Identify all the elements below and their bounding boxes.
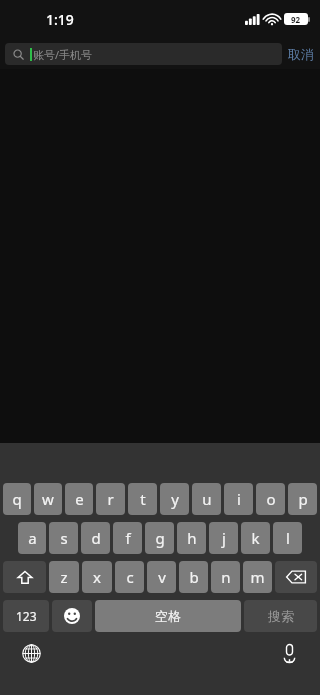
button[interactable]: f [113,522,142,554]
button[interactable]: t [128,483,157,515]
staticText: c [126,567,134,587]
button[interactable]: 搜索 [244,600,317,632]
staticText: r [107,489,114,509]
staticText: u [202,489,212,509]
button[interactable]: c [115,561,144,593]
button[interactable]: q [3,483,31,515]
button[interactable]: 123 [3,600,49,632]
staticText: n [221,567,231,587]
staticText: t [140,489,146,509]
button[interactable]: d [81,522,110,554]
button[interactable]: a [18,522,46,554]
button[interactable]: m [243,561,272,593]
button[interactable]: Voice input [276,640,302,666]
staticText: h [187,528,197,548]
button[interactable]: k [241,522,270,554]
button[interactable]: 取消 [288,46,314,62]
staticText: q [12,489,22,509]
staticText: 搜索 [268,608,294,624]
staticText: f [125,528,131,548]
button[interactable]: Shift [3,561,46,593]
staticText: x [93,567,101,587]
button[interactable]: Emoji [52,600,92,632]
button[interactable]: Switch language [18,640,44,666]
staticText: p [298,489,308,509]
button[interactable]: r [96,483,125,515]
button[interactable]: w [34,483,62,515]
button[interactable]: v [147,561,176,593]
staticText: e [75,489,84,509]
button[interactable]: b [179,561,208,593]
button[interactable]: o [256,483,285,515]
button[interactable]: e [65,483,93,515]
staticText: a [28,528,37,548]
staticText: 账号/手机号 [33,47,93,62]
staticText: k [251,528,260,548]
button[interactable]: i [224,483,253,515]
staticText: 123 [16,608,37,624]
button[interactable]: l [273,522,302,554]
staticText: 92 [291,14,301,25]
staticText: z [60,567,68,587]
button[interactable]: h [177,522,206,554]
button[interactable]: Backspace [275,561,317,593]
button[interactable]: x [82,561,112,593]
button[interactable]: j [209,522,238,554]
staticText: m [250,567,265,587]
staticText: y [171,489,179,509]
staticText: v [158,567,166,587]
staticText: o [266,489,276,509]
button[interactable]: u [192,483,221,515]
staticText: g [155,528,165,548]
staticText: d [91,528,101,548]
staticText: s [60,528,68,548]
staticText: 空格 [155,608,181,624]
button[interactable]: n [211,561,240,593]
staticText: w [42,489,54,509]
staticText: l [286,528,290,548]
button[interactable]: 空格 [95,600,241,632]
staticText: 取消 [288,46,314,62]
button[interactable]: g [145,522,174,554]
staticText: i [237,489,241,509]
staticText: j [222,528,226,548]
button[interactable]: y [160,483,189,515]
button[interactable]: 账号/手机号 [5,43,282,65]
button[interactable]: z [49,561,79,593]
staticText: 1:19 [46,10,74,29]
button[interactable]: s [49,522,78,554]
staticText: b [189,567,199,587]
button[interactable]: p [288,483,317,515]
